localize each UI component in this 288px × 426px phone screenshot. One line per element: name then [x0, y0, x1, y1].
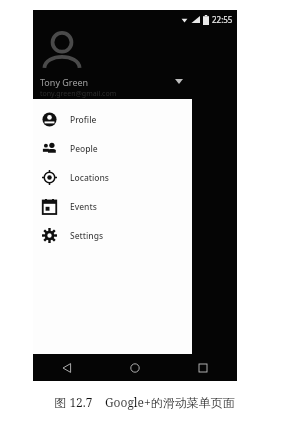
staticText: Profile — [70, 114, 97, 126]
staticText: People — [70, 143, 98, 155]
staticText: Settings — [70, 230, 104, 242]
button[interactable]: People — [33, 134, 192, 163]
button[interactable]: Switch account — [170, 72, 188, 90]
button[interactable]: Recents — [169, 354, 237, 381]
staticText: 22:55 — [212, 14, 233, 25]
button[interactable]: Back — [33, 354, 101, 381]
staticText: Tony Green — [40, 76, 89, 88]
button[interactable]: Locations — [33, 163, 192, 192]
button[interactable]: Settings — [33, 221, 192, 250]
staticText: 图 12.7 Google+的滑动菜单页面 — [54, 394, 235, 410]
button[interactable]: Home — [101, 354, 169, 381]
button[interactable]: Profile — [33, 105, 192, 134]
button[interactable]: Events — [33, 192, 192, 221]
staticText: Locations — [70, 172, 109, 184]
staticText: tony.green@gmail.com — [40, 89, 117, 99]
staticText: Events — [70, 201, 97, 213]
